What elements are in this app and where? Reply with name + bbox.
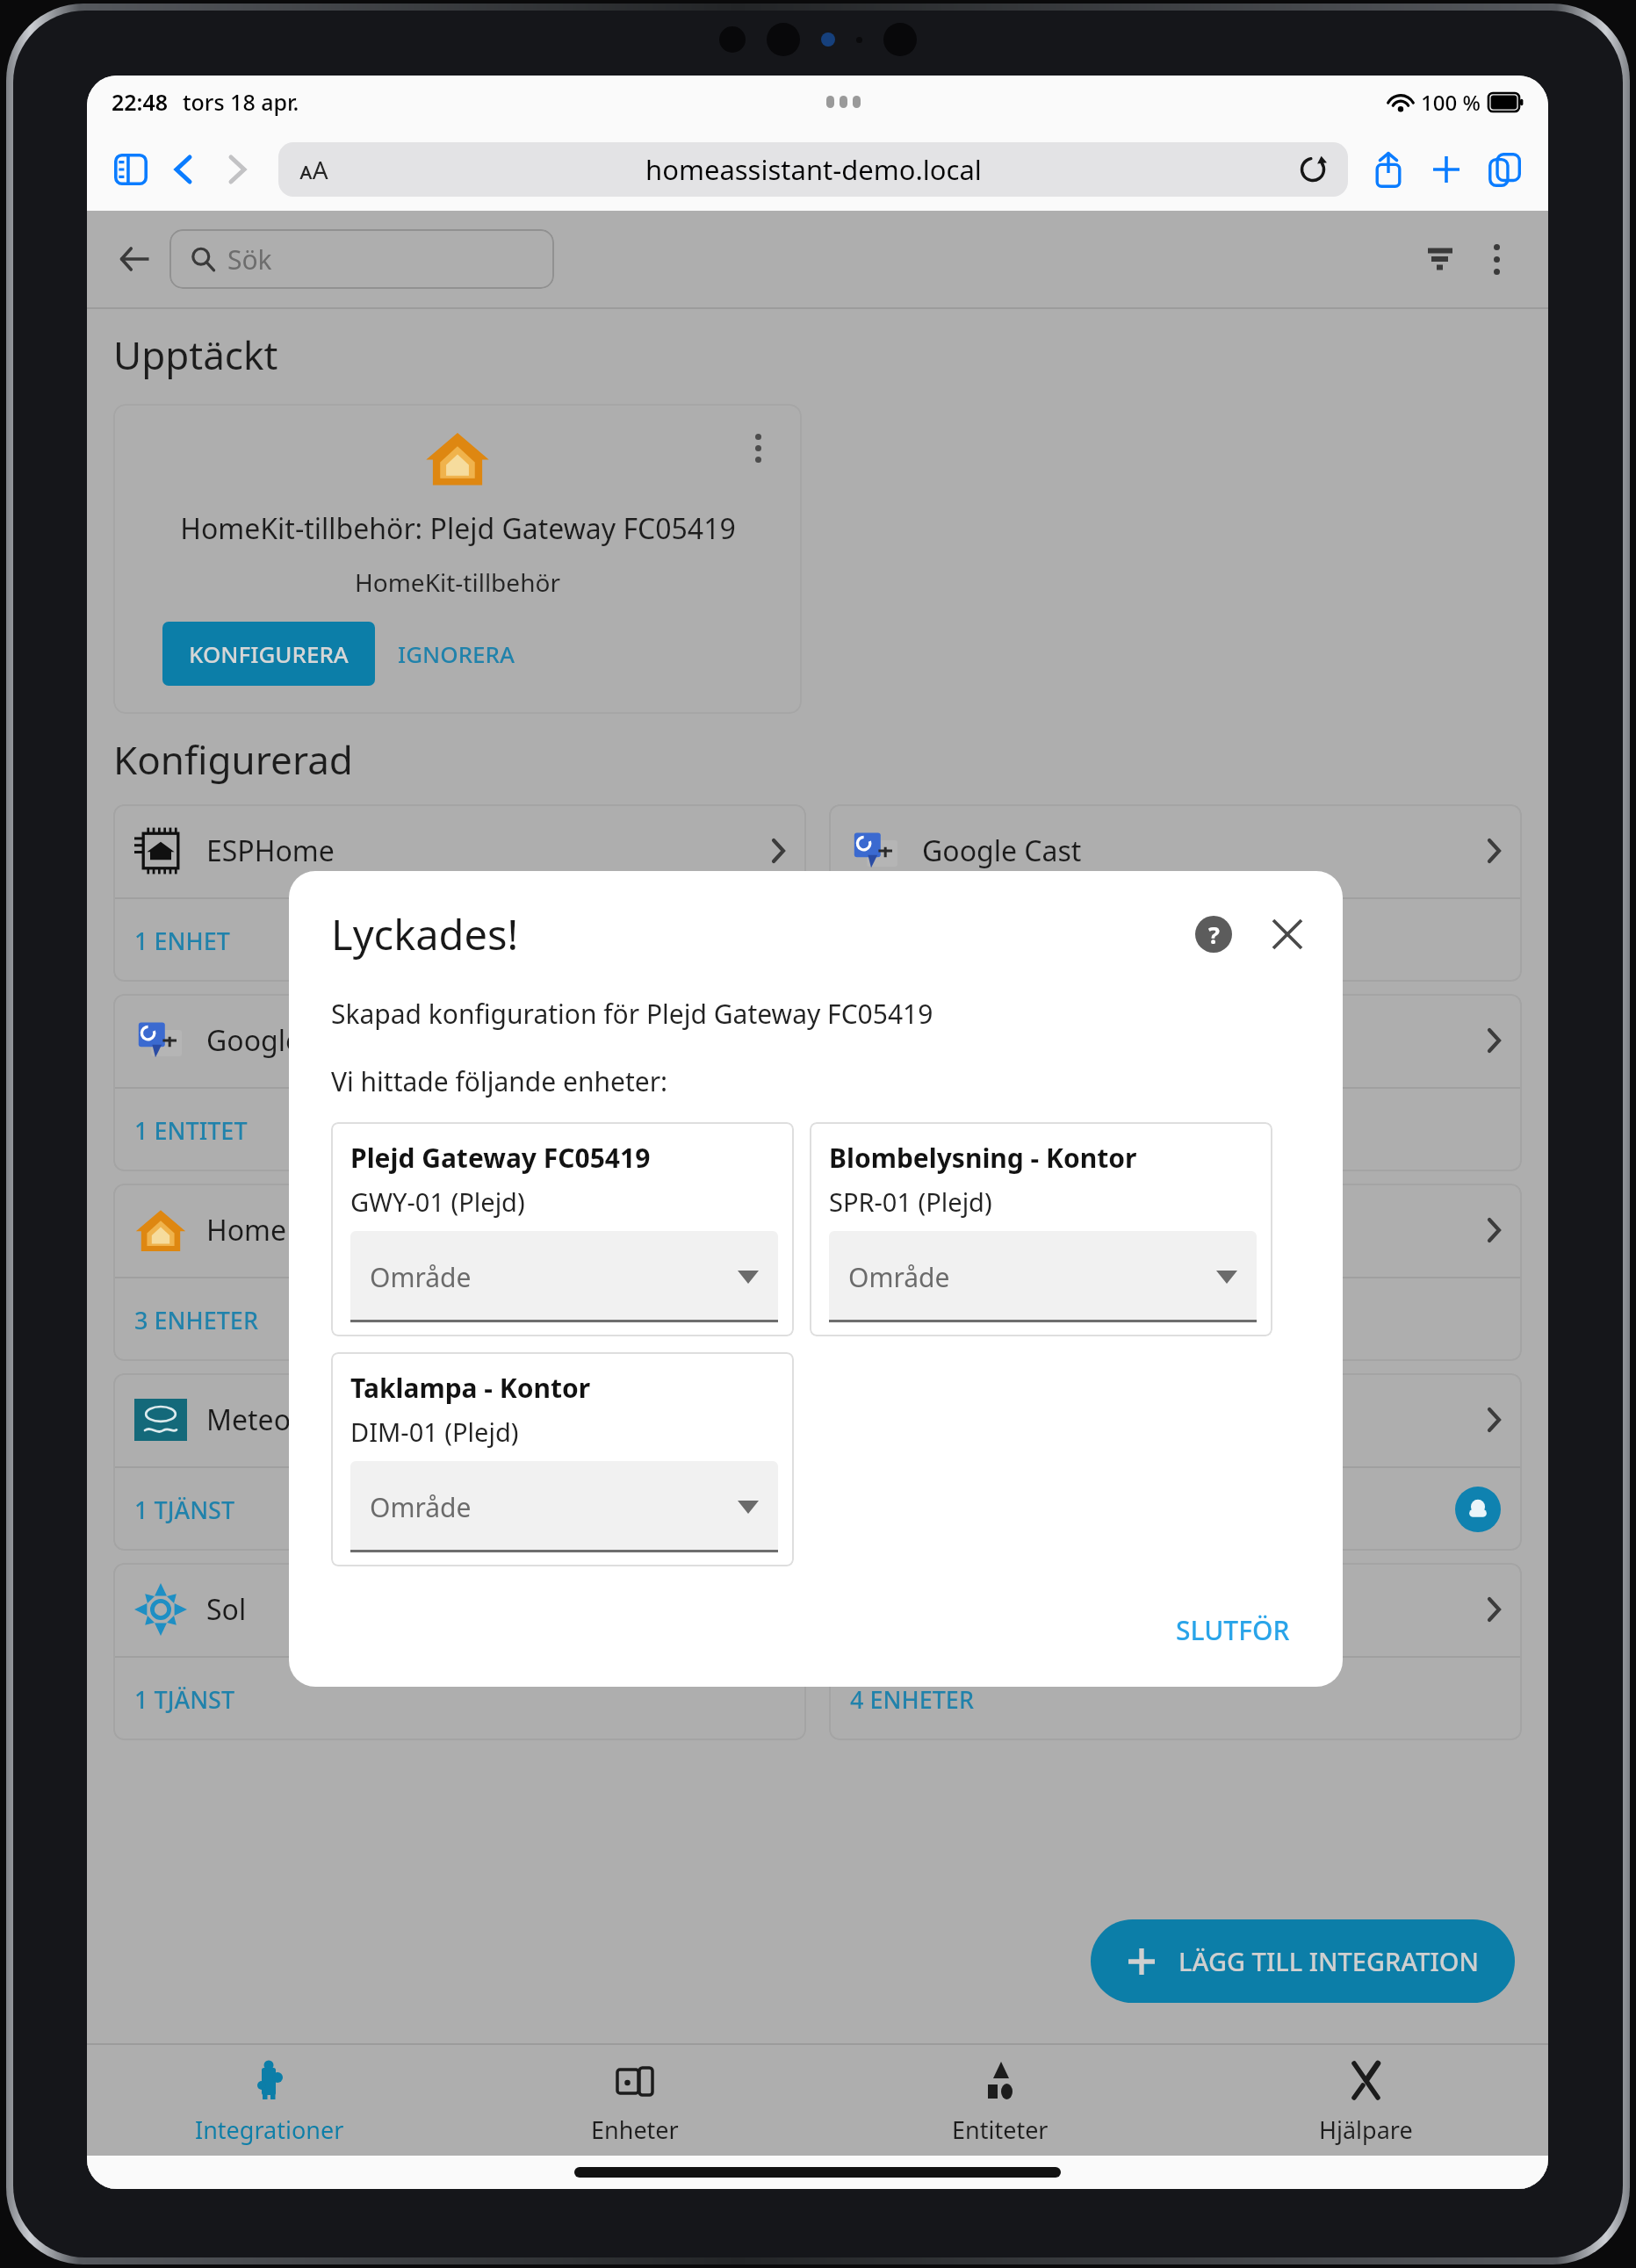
button[interactable]: Entiteter <box>818 2045 1183 2156</box>
button[interactable]: Back <box>162 149 203 190</box>
staticText: LÄGG TILL INTEGRATION <box>1178 1944 1480 1978</box>
button[interactable]: HomeKit-tillbehör <box>113 1184 806 1361</box>
button[interactable]: KONFIGURERA <box>162 622 375 686</box>
button[interactable]: HomeKit Device <box>829 994 1522 1171</box>
staticText: Upptäckt <box>113 328 278 381</box>
staticText: Enheter <box>591 2113 679 2146</box>
staticText: 1 TJÄNST <box>134 1494 235 1526</box>
staticText: 1 ENHET <box>134 925 230 957</box>
button[interactable]: Help <box>1188 909 1239 960</box>
button[interactable]: Område <box>350 1231 778 1322</box>
staticText: Område <box>370 1489 472 1525</box>
staticText: 100 % <box>1421 88 1481 117</box>
staticText: KONFIGURERA <box>189 638 349 669</box>
staticText: Google Cast <box>922 832 1082 870</box>
button[interactable]: SLUTFÖR <box>1160 1602 1306 1659</box>
staticText: DIM-01 (Plejd) <box>350 1415 519 1449</box>
staticText: Hjälpare <box>1319 2113 1413 2146</box>
button[interactable]: Sök <box>169 229 554 289</box>
staticText: Konfigurerad <box>113 733 353 786</box>
button[interactable]: sonos <box>829 1563 1522 1740</box>
staticText: Skapad konfiguration för Plejd Gateway F… <box>331 996 933 1032</box>
staticText: GWY-01 (Plejd) <box>350 1184 525 1219</box>
staticText: 1 ENTITET <box>850 1114 963 1147</box>
button[interactable]: Plejd <box>829 1184 1522 1361</box>
button[interactable]: Tabs <box>1483 148 1525 191</box>
button[interactable]: Integrationer <box>87 2045 452 2156</box>
staticText: 22:48 <box>112 87 169 117</box>
staticText: SLUTFÖR <box>1176 1612 1290 1648</box>
staticText: homeassistant-demo.local <box>645 151 982 188</box>
staticText: Sök <box>227 241 272 277</box>
staticText: Entiteter <box>952 2113 1049 2146</box>
staticText: Plejd Gateway FC05419 <box>350 1140 651 1176</box>
button[interactable]: Hjälpare <box>1183 2045 1548 2156</box>
staticText: Vi hittade följande enheter: <box>331 1063 668 1099</box>
staticText: tors 18 apr. <box>183 87 299 117</box>
staticText: SPR-01 (Plejd) <box>829 1184 992 1219</box>
staticText: Lyckades! <box>331 906 519 962</box>
button[interactable]: Radio Browser <box>829 1373 1522 1551</box>
staticText: Område <box>848 1259 950 1295</box>
button[interactable]: Område <box>350 1461 778 1552</box>
button[interactable]: Google Translate <box>113 994 806 1171</box>
staticText: 1 TJÄNST <box>134 1683 235 1716</box>
staticText: 3 ENHETER <box>134 1304 258 1336</box>
staticText: Integrationer <box>195 2113 344 2146</box>
staticText: HomeKit-tillbehör: Plejd Gateway FC05419 <box>180 509 736 548</box>
staticText: Område <box>370 1259 472 1295</box>
button[interactable]: Område <box>829 1231 1257 1322</box>
staticText: 3 ENHETER <box>850 1304 974 1336</box>
button[interactable]: Google Cast <box>829 804 1522 982</box>
staticText: ESPHome <box>206 832 335 870</box>
button[interactable]: Forward <box>217 149 257 190</box>
button[interactable]: Enheter <box>452 2045 818 2156</box>
staticText: Plejd <box>922 1211 987 1249</box>
button[interactable]: LÄGG TILL INTEGRATION <box>1091 1919 1515 2003</box>
staticText: Google Translate <box>206 1021 429 1060</box>
staticText: IGNORERA <box>398 638 515 669</box>
staticText: Blombelysning - Kontor <box>829 1140 1137 1176</box>
staticText: Meteorologisk institutt (Met.no) <box>206 1400 624 1439</box>
button[interactable]: Meteorologisk institutt (Met.no) <box>113 1373 806 1551</box>
button[interactable]: IGNORERA <box>375 622 538 686</box>
button[interactable]: Sidebar <box>110 148 152 191</box>
staticText: 1 ENTITET <box>134 1114 248 1147</box>
staticText: 4 ENHETER <box>850 1683 974 1716</box>
button[interactable]: homeassistant-demo.local <box>278 142 1348 197</box>
staticText: Sol <box>206 1590 247 1629</box>
staticText: ᴀA <box>299 153 328 186</box>
button[interactable]: Filter <box>1415 234 1466 284</box>
staticText: HomeKit-tillbehör <box>355 565 560 599</box>
button[interactable]: ESPHome <box>113 804 806 982</box>
staticText: HomeKit-tillbehör <box>206 1211 442 1249</box>
button[interactable]: More options <box>1471 234 1522 284</box>
button[interactable]: Share <box>1367 148 1409 191</box>
button[interactable]: Sol <box>113 1563 806 1740</box>
button[interactable]: Options <box>737 427 779 469</box>
staticText: ? <box>1208 918 1220 951</box>
staticText: Taklampa - Kontor <box>350 1370 591 1406</box>
button[interactable]: Close <box>1262 909 1313 960</box>
staticText: HomeKit Device <box>922 1021 1131 1060</box>
button[interactable]: New tab <box>1425 148 1467 191</box>
button[interactable]: Back <box>110 234 161 284</box>
